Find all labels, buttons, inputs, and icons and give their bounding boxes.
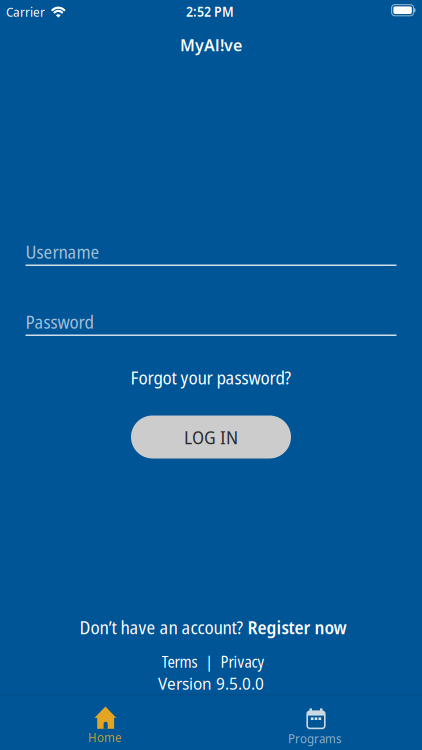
button[interactable]: Password <box>0 0 422 750</box>
staticText: Privacy <box>220 651 264 672</box>
staticText: Forgot your password? <box>130 365 291 390</box>
button[interactable]: Terms <box>161 651 197 672</box>
staticText: Carrier <box>6 2 45 21</box>
staticText: Programs <box>288 730 341 747</box>
button[interactable]: Home <box>15 695 195 747</box>
button[interactable]: Privacy <box>220 651 264 672</box>
staticText: LOG IN <box>184 424 238 450</box>
button[interactable]: Username <box>0 0 422 750</box>
button[interactable]: Programs <box>224 695 404 747</box>
staticText: Version 9.5.0.0 <box>158 673 264 694</box>
staticText: Don’t have an account? Register now <box>79 615 346 639</box>
button[interactable]: Forgot your password? <box>130 365 291 390</box>
staticText: Home <box>88 729 122 745</box>
staticText: MyAl!ve <box>180 34 242 56</box>
staticText: Terms <box>161 651 197 672</box>
staticText: Username <box>25 239 99 264</box>
staticText: Password <box>25 309 93 334</box>
button[interactable]: Don’t have an account? Register now <box>79 615 346 639</box>
button[interactable]: LOG IN <box>131 415 291 458</box>
staticText: | <box>205 651 212 672</box>
staticText: 2:52 PM <box>186 2 234 21</box>
